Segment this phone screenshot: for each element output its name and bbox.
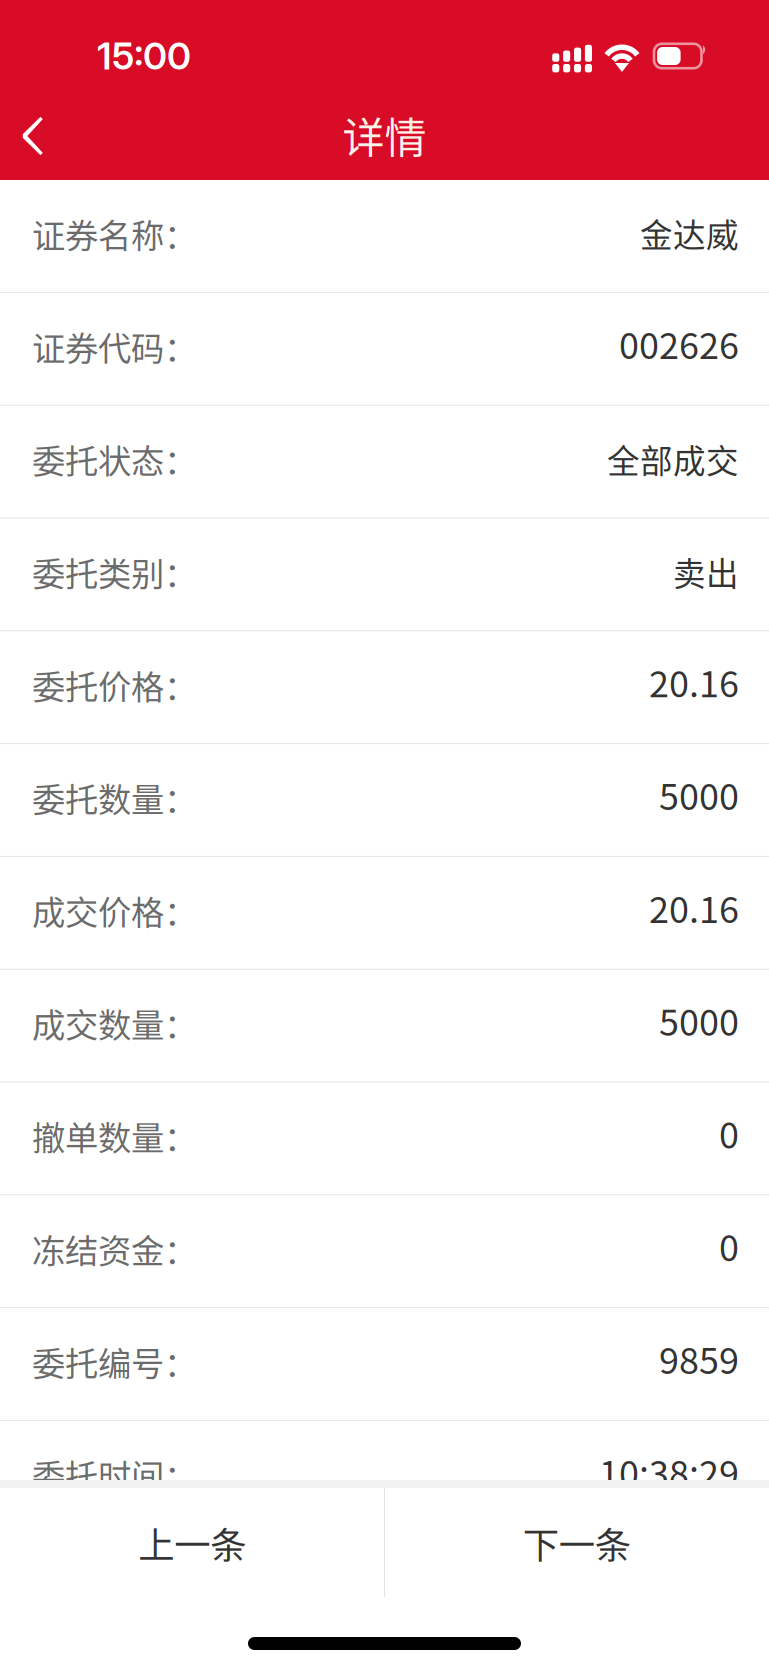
staticText: 002626 [619, 317, 739, 369]
button[interactable]: Back [0, 92, 67, 180]
staticText: 20.16 [649, 881, 739, 933]
staticText: 委托数量： [32, 773, 197, 822]
staticText: 撤单数量： [32, 1112, 197, 1160]
staticText: 冻结资金： [32, 1224, 197, 1273]
staticText: 委托时间： [32, 1450, 197, 1498]
staticText: 20.16 [649, 655, 739, 708]
staticText: 委托类别： [32, 548, 197, 596]
staticText: 15:00 [97, 33, 191, 79]
staticText: 成交数量： [32, 999, 197, 1047]
staticText: 0 [719, 1219, 739, 1272]
button[interactable]: 下一条 [384, 1488, 769, 1605]
staticText: 5000 [659, 768, 739, 820]
staticText: 全部成交 [607, 435, 739, 482]
staticText: 委托价格： [32, 660, 197, 709]
staticText: 金达威 [640, 210, 739, 257]
staticText: 0 [719, 1107, 739, 1159]
staticText: 详情 [342, 105, 426, 165]
staticText: 委托编号： [32, 1337, 197, 1386]
staticText: 委托状态： [32, 435, 197, 483]
button[interactable]: 上一条 [0, 1488, 384, 1605]
staticText: 证券代码： [32, 322, 197, 370]
staticText: 9859 [659, 1332, 739, 1384]
staticText: 上一条 [138, 1517, 246, 1569]
staticText: 下一条 [523, 1517, 631, 1569]
staticText: 10:38:29 [599, 1445, 739, 1497]
staticText: 成交价格： [32, 886, 197, 934]
staticText: 卖出 [673, 548, 739, 595]
staticText: 证券名称： [32, 209, 197, 258]
staticText: 5000 [659, 994, 739, 1046]
